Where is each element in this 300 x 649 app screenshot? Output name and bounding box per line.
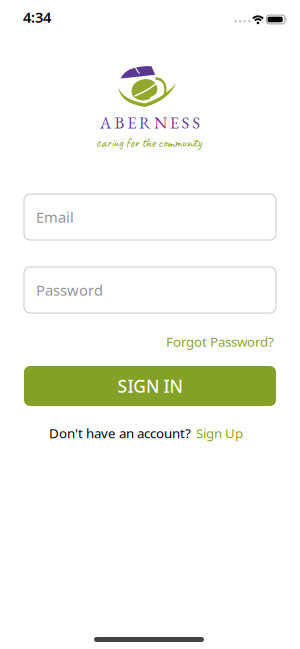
staticText: Forgot Password? [166, 333, 274, 350]
button[interactable]: Sign Up [196, 424, 243, 442]
staticText: SIGN IN [118, 374, 182, 397]
staticText: caring for the community [96, 134, 202, 151]
button[interactable]: Forgot Password? [166, 333, 274, 350]
button[interactable]: Email [24, 194, 276, 240]
button[interactable]: Password [24, 267, 276, 313]
staticText: Sign Up [196, 424, 243, 442]
button[interactable]: SIGN IN [24, 366, 276, 406]
staticText: ABERNESS [100, 112, 200, 134]
staticText: Email [36, 207, 74, 227]
staticText: Password [36, 280, 103, 300]
staticText: 4:34 [23, 7, 51, 27]
staticText: Don't have an account? [49, 424, 191, 442]
